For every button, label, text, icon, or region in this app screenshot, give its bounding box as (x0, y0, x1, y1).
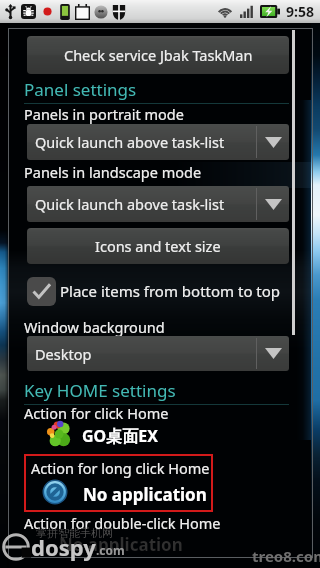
staticText: 9:58 (286, 2, 314, 21)
staticText: Action for click Home (24, 403, 169, 423)
staticText: Window background (24, 317, 165, 337)
button[interactable]: Check service Jbak TaskMan (27, 36, 289, 74)
button[interactable]: Quick launch above task-list (27, 186, 289, 222)
other: Expand (265, 199, 282, 210)
button[interactable]: GO桌面EX (24, 419, 214, 450)
staticText: No application (83, 483, 207, 506)
button[interactable]: Quick launch above task-list (27, 124, 289, 160)
staticText: Panels in landscape mode (24, 162, 202, 182)
staticText: .com (96, 542, 125, 558)
button[interactable]: Desktop (27, 336, 289, 371)
button[interactable]: Icons and text size (27, 228, 289, 264)
staticText: Icons and text size (95, 236, 221, 256)
other: Expand (265, 137, 282, 148)
staticText: GO桌面EX (82, 425, 158, 447)
other: Expand (265, 348, 282, 359)
staticText: Panel settings (24, 78, 137, 101)
staticText: Key HOME settings (24, 379, 176, 402)
staticText: Quick launch above task-list (35, 132, 256, 152)
staticText: Action for double-click Home (24, 513, 221, 533)
staticText: dospy (31, 532, 96, 562)
staticText: Desktop (35, 344, 256, 364)
button[interactable]: Place items from bottom to top (27, 276, 289, 306)
staticText: Check service Jbak TaskMan (64, 45, 253, 65)
staticText: Action for long click Home (31, 458, 210, 478)
button[interactable]: Action for long click Home (24, 454, 213, 512)
staticText: Panels in portrait mode (24, 104, 184, 124)
staticText: No application (59, 533, 183, 556)
other: No application (42, 479, 68, 505)
staticText: treo8.com (252, 546, 320, 566)
staticText: Place items from bottom to top (60, 281, 281, 301)
staticText: 掌拼智能手机网 (36, 526, 113, 540)
staticText: Quick launch above task-list (35, 194, 256, 214)
